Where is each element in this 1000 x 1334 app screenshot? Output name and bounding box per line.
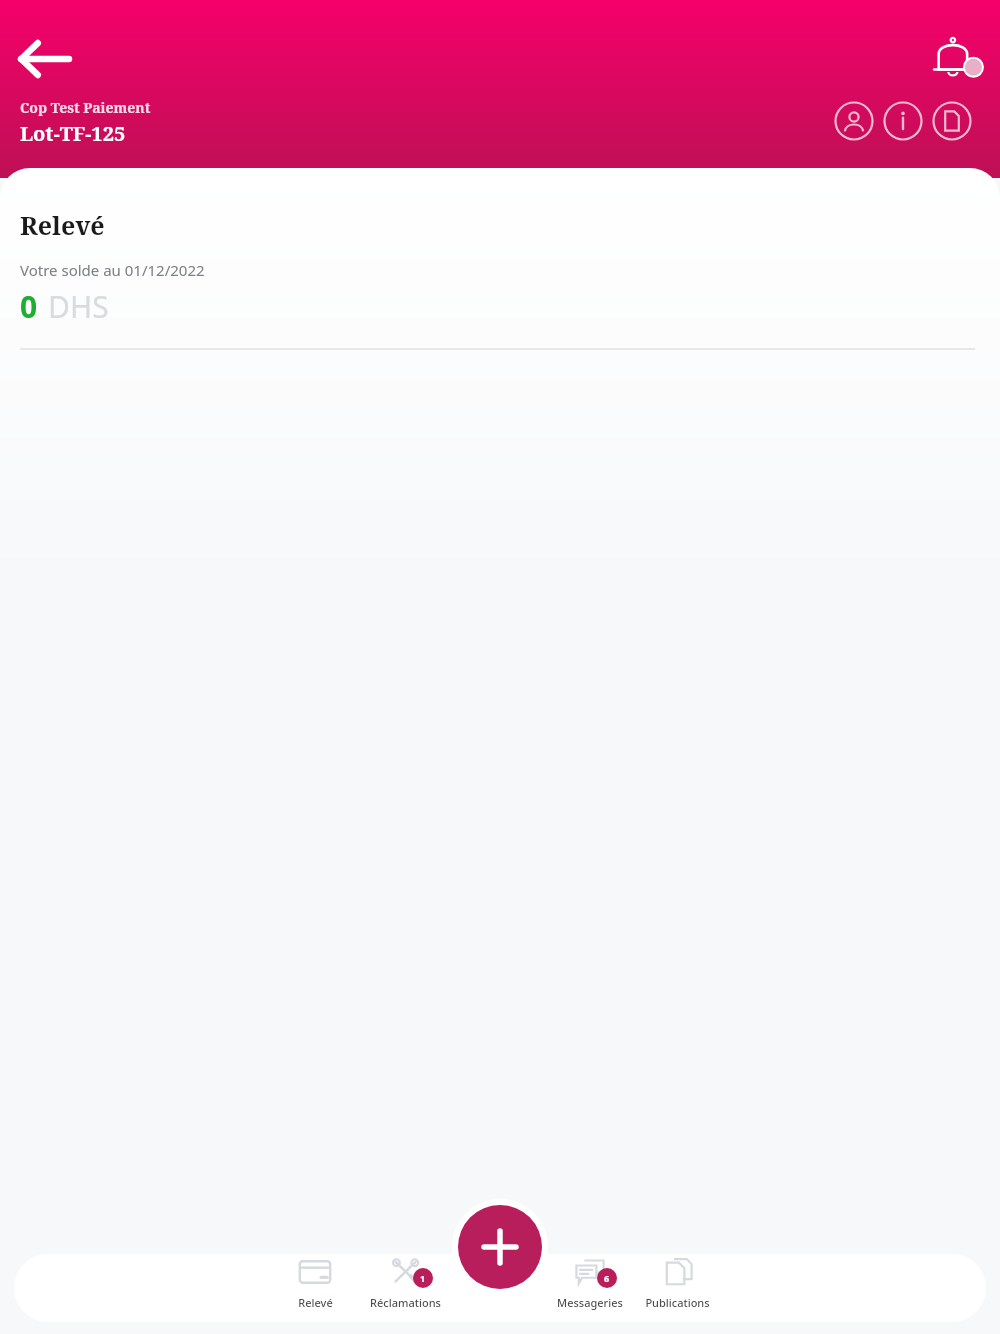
button[interactable]: 6 bbox=[547, 1252, 633, 1322]
button[interactable]: Documents bbox=[930, 99, 974, 143]
staticText: Relevé bbox=[298, 1295, 333, 1310]
button[interactable]: Relevé bbox=[272, 1252, 358, 1322]
staticText: 1 bbox=[420, 1272, 426, 1284]
staticText: 6 bbox=[604, 1272, 610, 1284]
staticText: Cop Test Paiement bbox=[20, 98, 151, 117]
staticText: Relevé bbox=[20, 208, 105, 242]
button[interactable]: Back bbox=[10, 28, 76, 90]
staticText: 0 bbox=[20, 286, 38, 327]
staticText: Messageries bbox=[557, 1295, 623, 1310]
staticText: Réclamations bbox=[370, 1295, 441, 1310]
staticText: Votre solde au 01/12/2022 bbox=[20, 260, 205, 280]
staticText: DHS bbox=[48, 286, 109, 327]
button[interactable]: Information bbox=[881, 99, 925, 143]
button[interactable]: 1 bbox=[362, 1252, 448, 1322]
button[interactable]: Profile bbox=[832, 99, 876, 143]
button[interactable]: Publications bbox=[634, 1252, 720, 1322]
button[interactable]: Notifications bbox=[925, 30, 987, 88]
button[interactable]: Add bbox=[458, 1205, 542, 1289]
staticText: Lot-TF-125 bbox=[20, 120, 126, 147]
staticText: Publications bbox=[645, 1295, 710, 1310]
